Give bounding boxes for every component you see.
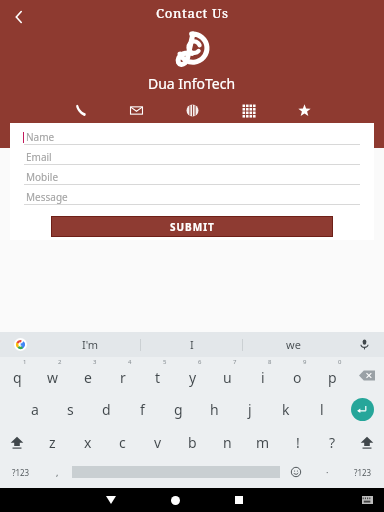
button[interactable]: Google bbox=[0, 332, 40, 357]
button[interactable]: Keypad bbox=[238, 100, 258, 120]
button[interactable]: we bbox=[243, 332, 344, 357]
button[interactable]: , bbox=[42, 459, 72, 485]
button[interactable]: Email bbox=[126, 100, 146, 120]
button[interactable]: b bbox=[175, 426, 210, 459]
button[interactable]: h bbox=[196, 393, 232, 426]
staticText: ? bbox=[329, 433, 336, 452]
staticText: o bbox=[293, 368, 302, 387]
button[interactable]: Shift bbox=[350, 426, 384, 459]
button[interactable]: I'm bbox=[40, 332, 140, 357]
staticText: n bbox=[223, 433, 232, 452]
staticText: I bbox=[190, 337, 194, 352]
button[interactable]: 7 bbox=[210, 357, 245, 393]
button[interactable]: 6 bbox=[175, 357, 210, 393]
button[interactable]: SUBMIT bbox=[52, 217, 332, 236]
staticText: k bbox=[282, 400, 290, 419]
staticText: Email bbox=[26, 150, 52, 164]
button[interactable]: 8 bbox=[245, 357, 280, 393]
staticText: f bbox=[140, 400, 145, 419]
staticText: e bbox=[84, 368, 92, 387]
button[interactable]: Call bbox=[70, 100, 90, 120]
button[interactable]: ?123 bbox=[342, 459, 384, 485]
staticText: 9 bbox=[303, 358, 307, 366]
staticText: s bbox=[67, 400, 74, 419]
button[interactable]: m bbox=[245, 426, 280, 459]
staticText: b bbox=[188, 433, 197, 452]
button[interactable]: 1 bbox=[0, 357, 35, 393]
button[interactable]: Website bbox=[182, 100, 202, 120]
staticText: g bbox=[174, 400, 183, 419]
staticText: 7 bbox=[233, 358, 237, 366]
button[interactable]: 0 bbox=[315, 357, 350, 393]
staticText: c bbox=[119, 433, 126, 452]
button[interactable]: ! bbox=[280, 426, 315, 459]
staticText: Message bbox=[26, 190, 68, 204]
staticText: 0 bbox=[338, 358, 342, 366]
staticText: 5 bbox=[163, 358, 167, 366]
staticText: ?123 bbox=[354, 467, 372, 478]
staticText: Dua InfoTech bbox=[148, 74, 236, 93]
staticText: x bbox=[84, 433, 92, 452]
staticText: SUBMIT bbox=[170, 220, 215, 234]
staticText: Mobile bbox=[26, 170, 59, 184]
button[interactable]: 4 bbox=[105, 357, 140, 393]
button[interactable]: Emoji bbox=[280, 459, 312, 485]
button[interactable]: v bbox=[140, 426, 175, 459]
button[interactable]: d bbox=[88, 393, 124, 426]
staticText: z bbox=[49, 433, 56, 452]
button[interactable]: 3 bbox=[70, 357, 105, 393]
button[interactable]: n bbox=[210, 426, 245, 459]
button[interactable]: Enter bbox=[340, 393, 384, 426]
staticText: p bbox=[328, 368, 337, 387]
button[interactable]: c bbox=[105, 426, 140, 459]
staticText: a bbox=[31, 400, 39, 419]
button[interactable]: Back bbox=[79, 488, 143, 512]
button[interactable]: f bbox=[124, 393, 160, 426]
staticText: d bbox=[102, 400, 111, 419]
staticText: h bbox=[210, 400, 219, 419]
staticText: i bbox=[261, 368, 265, 387]
staticText: 6 bbox=[198, 358, 202, 366]
button[interactable]: · bbox=[312, 459, 342, 485]
staticText: , bbox=[56, 466, 59, 478]
staticText: 4 bbox=[128, 358, 132, 366]
staticText: t bbox=[155, 368, 161, 387]
staticText: u bbox=[223, 368, 232, 387]
staticText: w bbox=[47, 368, 59, 387]
button[interactable]: Switch keyboard bbox=[350, 488, 384, 512]
button[interactable]: ? bbox=[315, 426, 350, 459]
staticText: r bbox=[120, 368, 126, 387]
button[interactable]: k bbox=[268, 393, 304, 426]
staticText: I'm bbox=[82, 337, 99, 352]
staticText: Contact Us bbox=[156, 4, 229, 22]
staticText: 3 bbox=[93, 358, 97, 366]
button[interactable]: Home bbox=[143, 488, 207, 512]
button[interactable]: ?123 bbox=[0, 459, 42, 485]
button[interactable]: 2 bbox=[35, 357, 70, 393]
button[interactable]: z bbox=[34, 426, 70, 459]
button[interactable]: g bbox=[160, 393, 196, 426]
button[interactable]: Voice input bbox=[344, 332, 384, 357]
staticText: 2 bbox=[58, 358, 62, 366]
staticText: l bbox=[320, 400, 324, 419]
staticText: Name bbox=[26, 130, 55, 144]
button[interactable]: j bbox=[232, 393, 268, 426]
staticText: ! bbox=[296, 433, 300, 452]
button[interactable]: s bbox=[52, 393, 88, 426]
button[interactable]: Rate us bbox=[294, 100, 314, 120]
button[interactable]: Backspace bbox=[350, 357, 384, 393]
button[interactable]: x bbox=[70, 426, 105, 459]
button[interactable]: I bbox=[141, 332, 242, 357]
button[interactable]: Recents bbox=[207, 488, 271, 512]
button[interactable]: Back bbox=[4, 2, 34, 32]
staticText: v bbox=[154, 433, 162, 452]
staticText: 8 bbox=[268, 358, 272, 366]
button[interactable]: a bbox=[17, 393, 52, 426]
button[interactable]: 9 bbox=[280, 357, 315, 393]
button[interactable]: l bbox=[304, 393, 340, 426]
button[interactable]: 5 bbox=[140, 357, 175, 393]
staticText: q bbox=[13, 368, 22, 387]
button[interactable]: Shift bbox=[0, 426, 34, 459]
